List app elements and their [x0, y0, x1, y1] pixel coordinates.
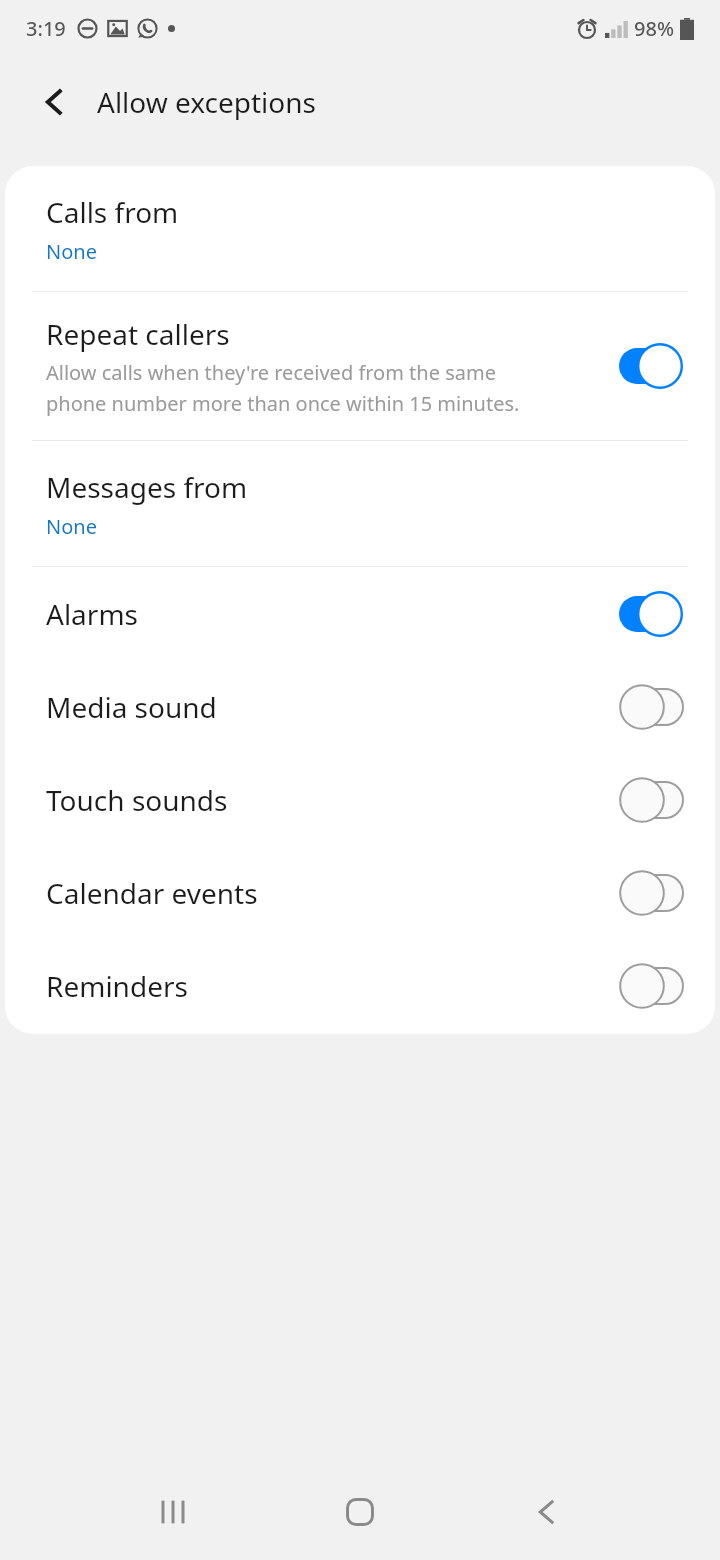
staticText: 3:19	[26, 15, 66, 42]
button[interactable]: Off	[619, 963, 683, 1009]
staticText: Media sound	[46, 688, 619, 726]
button[interactable]: On	[619, 343, 683, 389]
staticText: Allow calls when they're received from t…	[46, 359, 558, 417]
staticText: Calendar events	[46, 874, 619, 912]
button[interactable]: Off	[619, 684, 683, 730]
button[interactable]: Calls from	[5, 166, 715, 291]
staticText: Touch sounds	[46, 781, 619, 819]
staticText: Calls from	[46, 193, 179, 231]
staticText: Alarms	[46, 595, 619, 633]
button[interactable]: Alarms	[5, 567, 715, 660]
staticText: None	[46, 238, 97, 265]
button[interactable]: Off	[619, 870, 683, 916]
button[interactable]: Messages from	[5, 441, 715, 566]
staticText: Reminders	[46, 967, 619, 1005]
button[interactable]: Repeat callers	[5, 292, 715, 440]
button[interactable]: Media sound	[5, 660, 715, 753]
button[interactable]: Back	[22, 69, 88, 135]
button[interactable]: Touch sounds	[5, 753, 715, 846]
button[interactable]: Off	[619, 777, 683, 823]
button[interactable]: Home	[320, 1472, 400, 1552]
button[interactable]: On	[619, 591, 683, 637]
button[interactable]: Reminders	[5, 939, 715, 1032]
button[interactable]: Recent apps	[133, 1472, 213, 1552]
staticText: 98%	[634, 15, 674, 42]
button[interactable]: Calendar events	[5, 846, 715, 939]
button[interactable]: Back	[507, 1472, 587, 1552]
staticText: Repeat callers	[46, 315, 230, 353]
staticText: None	[46, 513, 97, 540]
staticText: Messages from	[46, 468, 248, 506]
staticText: Allow exceptions	[97, 83, 316, 121]
